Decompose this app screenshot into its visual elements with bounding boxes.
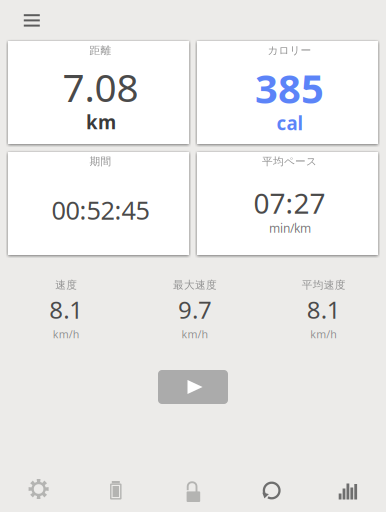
staticText: km/h (310, 327, 337, 341)
staticText: 385 (255, 61, 324, 114)
staticText: 7.08 (62, 61, 138, 113)
staticText: km/h (181, 327, 208, 341)
staticText: 07:27 (253, 184, 325, 222)
staticText: 距離 (89, 44, 111, 57)
staticText: km (86, 110, 116, 134)
staticText: 8.1 (49, 294, 83, 325)
button[interactable]: Lock (184, 479, 205, 500)
staticText: min/km (269, 220, 311, 236)
staticText: 9.7 (178, 294, 212, 325)
button[interactable]: Reset (261, 480, 282, 501)
staticText: cal (276, 111, 303, 135)
staticText: 00:52:45 (51, 193, 149, 227)
button[interactable]: Battery (105, 478, 126, 499)
staticText: 期間 (89, 155, 111, 168)
staticText: 平均ペース (262, 155, 317, 168)
button[interactable]: Menu (10, 3, 54, 37)
staticText: 最大速度 (173, 278, 217, 291)
staticText: 平均速度 (302, 278, 346, 291)
button[interactable]: Settings (28, 478, 49, 499)
button[interactable]: Statistics (337, 478, 358, 499)
staticText: 速度 (55, 278, 77, 291)
staticText: km/h (53, 327, 80, 341)
staticText: カロリー (267, 44, 311, 57)
button[interactable]: Start (158, 370, 228, 404)
staticText: 8.1 (307, 294, 341, 325)
